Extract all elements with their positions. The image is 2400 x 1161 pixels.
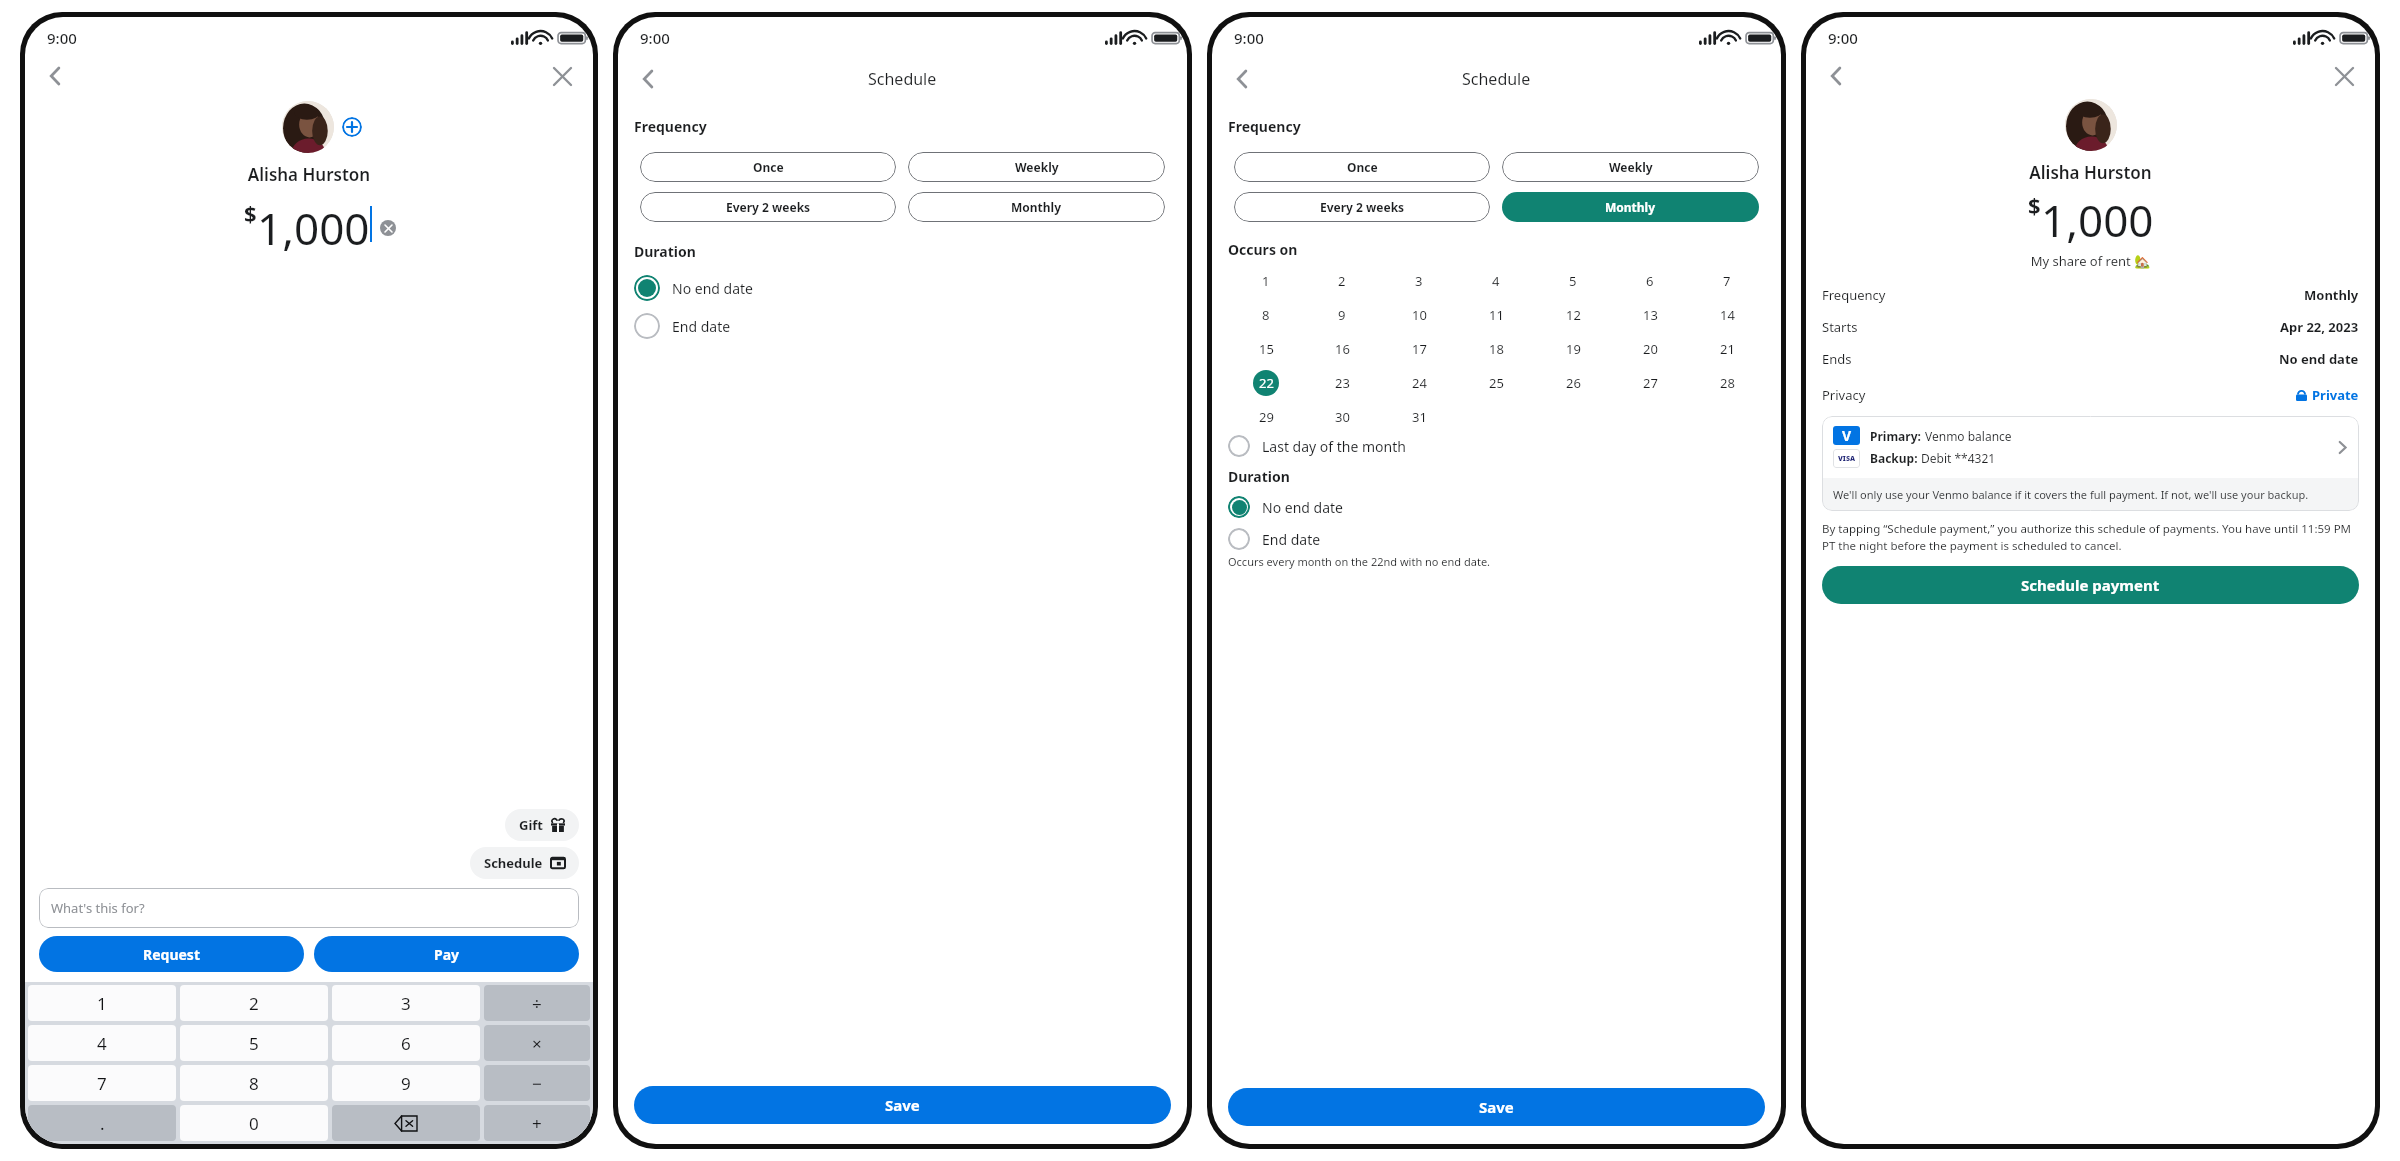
- button[interactable]: What's this for?: [39, 888, 579, 928]
- button[interactable]: Request: [39, 936, 304, 972]
- button[interactable]: Frequency: [1822, 286, 2359, 304]
- button[interactable]: 3: [332, 985, 480, 1021]
- button[interactable]: 5: [180, 1025, 328, 1061]
- staticText: VISA: [1838, 454, 1856, 464]
- button[interactable]: Back: [1226, 62, 1260, 96]
- button[interactable]: +: [484, 1105, 590, 1141]
- button[interactable]: 8: [1253, 302, 1279, 328]
- button[interactable]: 3: [1406, 268, 1432, 294]
- staticText: No end date: [2279, 350, 2359, 368]
- button[interactable]: Every 2 weeks: [1234, 192, 1490, 222]
- button[interactable]: Once: [640, 152, 896, 182]
- button[interactable]: ÷: [484, 985, 590, 1021]
- staticText: 15: [1259, 340, 1274, 358]
- button[interactable]: ×: [484, 1025, 590, 1061]
- button[interactable]: Gift: [505, 809, 579, 841]
- button[interactable]: Backspace: [332, 1105, 480, 1141]
- button[interactable]: 14: [1714, 302, 1740, 328]
- button[interactable]: 26: [1560, 370, 1586, 396]
- button[interactable]: No end date: [1228, 496, 1765, 518]
- staticText: Weekly: [1015, 159, 1059, 175]
- button[interactable]: 4: [1483, 268, 1509, 294]
- button[interactable]: 4: [28, 1025, 176, 1061]
- staticText: Debit **4321: [1921, 450, 1996, 466]
- button[interactable]: Every 2 weeks: [640, 192, 896, 222]
- button[interactable]: 2: [1329, 268, 1355, 294]
- button[interactable]: Clear amount: [380, 220, 396, 236]
- button[interactable]: 2: [180, 985, 328, 1021]
- staticText: .: [100, 1112, 105, 1135]
- button[interactable]: Schedule payment: [1822, 566, 2359, 604]
- button[interactable]: 25: [1483, 370, 1509, 396]
- button[interactable]: Once: [1234, 152, 1490, 182]
- staticText: 10: [1412, 306, 1427, 324]
- button[interactable]: 7: [1714, 268, 1740, 294]
- button[interactable]: 21: [1714, 336, 1740, 362]
- button[interactable]: 23: [1329, 370, 1355, 396]
- button[interactable]: Weekly: [908, 152, 1165, 182]
- staticText: 8: [249, 1072, 259, 1095]
- button[interactable]: Close: [2327, 59, 2361, 93]
- button[interactable]: 12: [1560, 302, 1586, 328]
- staticText: 3: [1415, 272, 1423, 290]
- button[interactable]: End date: [1228, 528, 1765, 550]
- button[interactable]: 7: [28, 1065, 176, 1101]
- button[interactable]: 9: [1329, 302, 1355, 328]
- button[interactable]: −: [484, 1065, 590, 1101]
- button[interactable]: V: [1822, 416, 2359, 511]
- button[interactable]: Last day of the month: [1228, 435, 1765, 457]
- button[interactable]: Close: [545, 59, 579, 93]
- staticText: 23: [1335, 374, 1350, 392]
- button[interactable]: 9: [332, 1065, 480, 1101]
- staticText: Schedule: [1462, 68, 1531, 90]
- button[interactable]: Monthly: [1502, 192, 1759, 222]
- button[interactable]: Save: [1228, 1088, 1765, 1126]
- button[interactable]: 1: [1253, 268, 1279, 294]
- button[interactable]: 15: [1253, 336, 1279, 362]
- button[interactable]: Weekly: [1502, 152, 1759, 182]
- button[interactable]: 19: [1560, 336, 1586, 362]
- button[interactable]: 16: [1329, 336, 1355, 362]
- button[interactable]: 13: [1637, 302, 1663, 328]
- button[interactable]: Privacy: [1822, 386, 2359, 404]
- staticText: Backup:: [1870, 450, 1921, 466]
- button[interactable]: Back: [39, 59, 73, 93]
- button[interactable]: 5: [1560, 268, 1586, 294]
- button[interactable]: Back: [1820, 59, 1854, 93]
- staticText: 19: [1566, 340, 1581, 358]
- button[interactable]: 0: [180, 1105, 328, 1141]
- button[interactable]: 10: [1406, 302, 1432, 328]
- staticText: 1,000: [2041, 190, 2154, 250]
- button[interactable]: 28: [1714, 370, 1740, 396]
- button[interactable]: Starts: [1822, 318, 2359, 336]
- button[interactable]: 20: [1637, 336, 1663, 362]
- button[interactable]: 8: [180, 1065, 328, 1101]
- button[interactable]: 17: [1406, 336, 1432, 362]
- button[interactable]: .: [28, 1105, 176, 1141]
- button[interactable]: [2065, 99, 2117, 151]
- button[interactable]: Ends: [1822, 350, 2359, 368]
- button[interactable]: 29: [1253, 404, 1279, 430]
- button[interactable]: 11: [1483, 302, 1509, 328]
- button[interactable]: Add person: [342, 117, 362, 137]
- button[interactable]: 18: [1483, 336, 1509, 362]
- button[interactable]: No end date: [634, 275, 1171, 301]
- button[interactable]: 24: [1406, 370, 1432, 396]
- button[interactable]: 30: [1329, 404, 1355, 430]
- button[interactable]: 1: [28, 985, 176, 1021]
- button[interactable]: 31: [1406, 404, 1432, 430]
- button[interactable]: [282, 101, 334, 153]
- staticText: 22: [1259, 374, 1274, 392]
- staticText: Gift: [519, 816, 543, 834]
- button[interactable]: 27: [1637, 370, 1663, 396]
- button[interactable]: Monthly: [908, 192, 1165, 222]
- staticText: 1: [1262, 272, 1270, 290]
- button[interactable]: 6: [1637, 268, 1663, 294]
- button[interactable]: 22: [1253, 370, 1279, 396]
- button[interactable]: Pay: [314, 936, 579, 972]
- button[interactable]: End date: [634, 313, 1171, 339]
- button[interactable]: Save: [634, 1086, 1171, 1124]
- button[interactable]: Back: [632, 62, 666, 96]
- button[interactable]: 6: [332, 1025, 480, 1061]
- button[interactable]: Schedule: [470, 847, 579, 879]
